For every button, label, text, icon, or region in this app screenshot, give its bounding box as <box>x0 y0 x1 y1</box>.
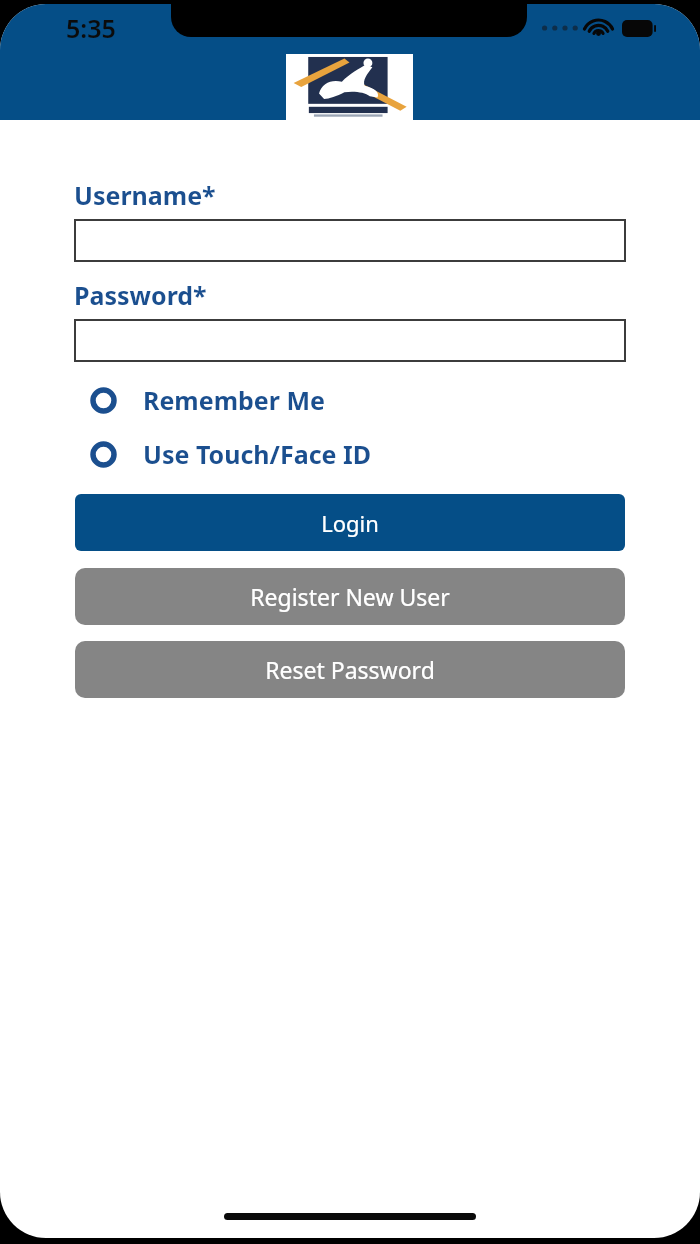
button[interactable]: Remember Me <box>0 380 700 420</box>
button[interactable]: Register New User <box>75 568 625 625</box>
staticText: Remember Me <box>143 383 325 417</box>
staticText: Register New User <box>250 581 450 612</box>
button[interactable]: Reset Password <box>75 641 625 698</box>
button[interactable] <box>74 319 626 362</box>
staticText: 5:35 <box>66 11 116 45</box>
button[interactable] <box>74 219 626 262</box>
staticText: Password* <box>74 278 207 312</box>
staticText: Username* <box>74 178 216 212</box>
staticText: Reset Password <box>265 654 435 685</box>
staticText: Login <box>321 508 379 538</box>
button[interactable]: Use Touch/Face ID <box>0 434 700 474</box>
button[interactable]: Login <box>75 494 625 551</box>
staticText: Use Touch/Face ID <box>143 437 372 471</box>
